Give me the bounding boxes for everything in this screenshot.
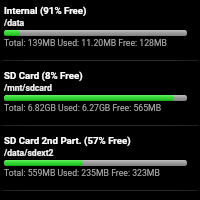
button[interactable]: SD Card (8% Free) [0, 70, 200, 113]
staticText: /mnt/sdcard [4, 83, 52, 93]
staticText: /data/sdext2 [4, 148, 54, 158]
button[interactable]: SD Card 2nd Part. (57% Free) [0, 135, 200, 178]
staticText: Internal (91% Free) [4, 5, 87, 16]
staticText: /data [4, 18, 25, 28]
button[interactable]: Internal (91% Free) [0, 5, 200, 48]
staticText: Total: 6.82GB Used: 6.27GB Free: 565MB [4, 103, 162, 113]
staticText: SD Card 2nd Part. (57% Free) [4, 135, 131, 146]
staticText: Total: 559MB Used: 235MB Free: 323MB [4, 168, 160, 178]
staticText: Total: 139MB Used: 11.20MB Free: 128MB [4, 38, 167, 48]
staticText: SD Card (8% Free) [4, 70, 83, 81]
